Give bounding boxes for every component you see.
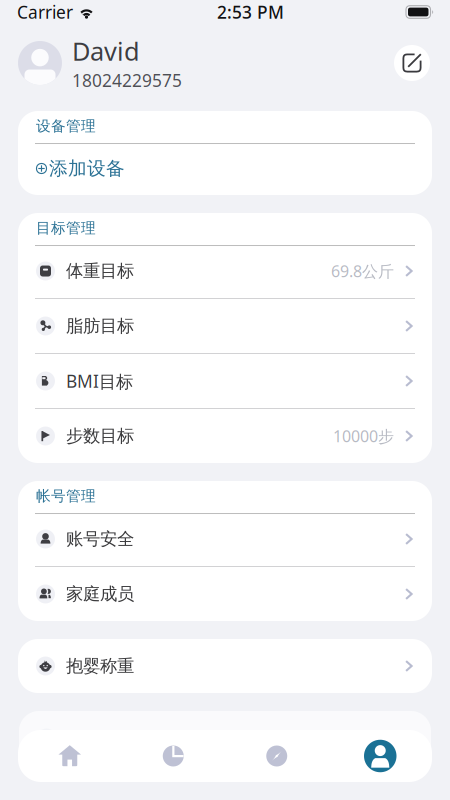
button[interactable]: BMI目标	[18, 354, 432, 408]
staticText: 2:53 PM	[217, 0, 284, 23]
button[interactable]: 账号安全	[18, 512, 432, 566]
button[interactable]: David	[18, 34, 182, 92]
staticText: 帐号管理	[36, 487, 96, 505]
button[interactable]: 步数目标	[18, 409, 432, 463]
button[interactable]: 体重目标	[18, 244, 432, 298]
button[interactable]: Home	[18, 730, 121, 782]
button[interactable]: 抱婴称重	[18, 639, 432, 693]
button[interactable]: 家庭成员	[18, 567, 432, 621]
button[interactable]: Profile	[328, 730, 432, 782]
button[interactable]: Discover	[225, 730, 328, 782]
staticText: 账号安全	[66, 528, 134, 550]
staticText: 添加设备	[49, 157, 125, 180]
button[interactable]: 添加设备	[18, 142, 432, 195]
staticText: 设备管理	[36, 117, 96, 135]
staticText: 家庭成员	[66, 583, 134, 605]
staticText: David	[72, 34, 140, 68]
staticText: Carrier	[17, 0, 73, 23]
staticText: 目标管理	[36, 219, 96, 237]
staticText: 体重目标	[66, 260, 134, 282]
staticText: 步数目标	[66, 425, 134, 447]
button[interactable]: 脂肪目标	[18, 299, 432, 353]
button[interactable]: Statistics	[121, 730, 225, 782]
staticText: 18024229575	[72, 69, 182, 92]
staticText: 69.8公斤	[331, 260, 394, 282]
staticText: 脂肪目标	[66, 315, 134, 337]
staticText: 10000步	[333, 425, 394, 447]
button[interactable]: Edit profile	[394, 45, 430, 81]
staticText: BMI目标	[66, 369, 133, 392]
staticText: 抱婴称重	[66, 655, 134, 677]
